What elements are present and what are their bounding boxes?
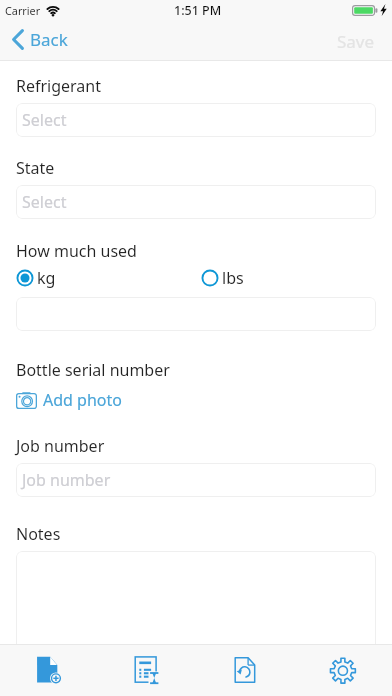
staticText: kg xyxy=(37,267,56,289)
staticText: Refrigerant xyxy=(16,75,102,97)
staticText: Carrier xyxy=(5,3,41,18)
button[interactable] xyxy=(16,297,376,331)
staticText: Add photo xyxy=(43,389,122,411)
staticText: Select xyxy=(22,191,67,213)
button[interactable]: Select xyxy=(16,103,376,137)
button[interactable]: Add photo xyxy=(13,386,125,414)
button[interactable]: Select xyxy=(16,185,376,219)
button[interactable]: New document xyxy=(0,645,98,696)
staticText: State xyxy=(16,157,55,179)
button[interactable]: Settings xyxy=(294,645,392,696)
staticText: How much used xyxy=(16,240,137,262)
button[interactable]: Save xyxy=(320,26,392,57)
button[interactable]: Back xyxy=(8,26,76,53)
button[interactable]: Pending documents xyxy=(98,645,196,696)
button[interactable]: kg xyxy=(13,263,59,293)
staticText: Job number xyxy=(22,469,111,491)
button[interactable]: Document history xyxy=(196,645,294,696)
staticText: 1:51 PM xyxy=(174,2,222,19)
staticText: Bottle serial number xyxy=(16,359,170,381)
button[interactable] xyxy=(16,551,376,651)
staticText: lbs xyxy=(222,267,244,289)
button[interactable]: lbs xyxy=(198,263,247,293)
button[interactable]: Job number xyxy=(16,463,376,497)
staticText: Save xyxy=(337,30,375,53)
staticText: Select xyxy=(22,109,67,131)
staticText: Back xyxy=(30,28,68,51)
staticText: Notes xyxy=(16,523,61,545)
staticText: Job number xyxy=(16,435,105,457)
